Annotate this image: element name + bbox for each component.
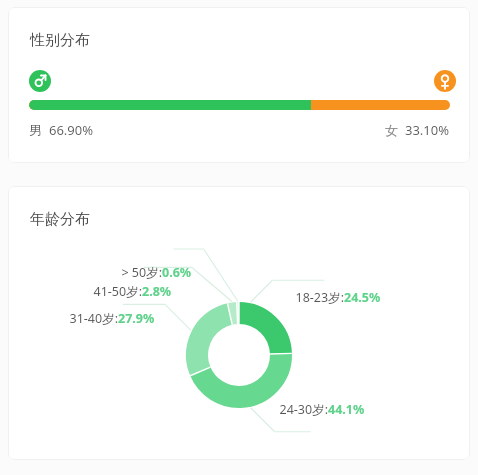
button[interactable]: 性别分布 bbox=[8, 7, 470, 163]
button[interactable] bbox=[29, 100, 450, 110]
staticText: 33.10% bbox=[405, 121, 450, 139]
staticText: 男 bbox=[29, 122, 42, 138]
button[interactable]: Female bbox=[434, 70, 456, 92]
button[interactable]: 41-50岁: bbox=[90, 283, 172, 300]
button[interactable]: 年龄分布 bbox=[8, 186, 470, 460]
button[interactable]: 24-30岁: bbox=[276, 401, 365, 418]
staticText: 41-50岁: bbox=[90, 283, 142, 300]
staticText: 27.9% bbox=[118, 310, 155, 327]
button[interactable]: > 50岁: bbox=[118, 264, 192, 281]
staticText: 性别分布 bbox=[30, 31, 90, 50]
staticText: 24-30岁: bbox=[276, 401, 328, 418]
staticText: > 50岁: bbox=[118, 264, 162, 281]
staticText: 31-40岁: bbox=[66, 310, 118, 327]
button[interactable]: 31-40岁: bbox=[66, 310, 155, 327]
staticText: 66.90% bbox=[49, 121, 94, 139]
staticText: 2.8% bbox=[142, 283, 172, 300]
staticText: 18-23岁: bbox=[292, 289, 344, 306]
staticText: 44.1% bbox=[328, 401, 365, 418]
staticText: 24.5% bbox=[344, 289, 381, 306]
staticText: 0.6% bbox=[162, 264, 192, 281]
staticText: 年龄分布 bbox=[30, 210, 90, 229]
button[interactable]: Male bbox=[29, 70, 51, 92]
button[interactable]: 18-23岁: bbox=[292, 289, 381, 306]
staticText: 女 bbox=[385, 122, 398, 138]
